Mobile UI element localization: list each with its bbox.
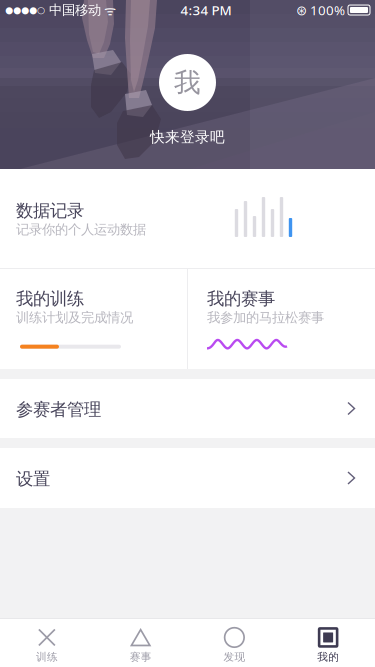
staticText: 发现 — [223, 650, 245, 663]
button[interactable]: 我的赛事 — [188, 269, 375, 369]
staticText: 训练 — [36, 650, 58, 663]
button[interactable]: 赛事 — [94, 619, 188, 667]
staticText: 记录你的个人运动数据 — [16, 221, 146, 238]
staticText: 中国移动 — [45, 2, 101, 18]
staticText: 我的赛事 — [207, 288, 275, 309]
button[interactable]: 训练 — [0, 619, 94, 667]
button[interactable]: 我的 — [281, 619, 375, 667]
staticText: 参赛者管理 — [16, 399, 101, 420]
staticText: 我 — [174, 66, 201, 99]
staticText: 设置 — [16, 468, 50, 490]
staticText: ᯤ — [101, 1, 116, 19]
staticText: 4:34 PM — [180, 1, 231, 19]
button[interactable]: 设置 — [0, 448, 375, 508]
staticText: ⊛ 100% — [296, 1, 345, 19]
staticText: 快来登录吧 — [150, 128, 225, 146]
staticText: ●●●●○ — [5, 5, 45, 15]
staticText: 我的训练 — [16, 288, 84, 309]
staticText: 我参加的马拉松赛事 — [207, 309, 324, 326]
staticText: 我的 — [317, 650, 339, 663]
staticText: 数据记录 — [16, 200, 84, 221]
button[interactable]: 发现 — [187, 619, 281, 667]
staticText: 训练计划及完成情况 — [16, 309, 133, 326]
button[interactable]: 参赛者管理 — [0, 379, 375, 438]
button[interactable]: 数据记录 — [0, 169, 375, 268]
staticText: 赛事 — [130, 650, 152, 663]
button[interactable]: 我的训练 — [0, 269, 187, 369]
